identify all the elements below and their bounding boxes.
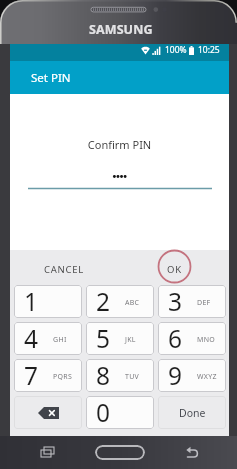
button[interactable]: 4: [14, 322, 82, 355]
button[interactable]: Set PIN: [10, 61, 229, 94]
button[interactable]: Done: [158, 396, 226, 429]
button[interactable]: OK: [158, 257, 191, 282]
staticText: 10:25: [198, 44, 220, 56]
staticText: JKL: [125, 335, 136, 345]
staticText: 3: [168, 285, 183, 318]
button[interactable]: Recent apps: [40, 445, 55, 460]
staticText: 100%: [165, 44, 187, 56]
button[interactable]: 7: [14, 359, 82, 392]
staticText: 7: [24, 359, 39, 392]
staticText: SAMSUNG: [89, 21, 153, 38]
staticText: DEF: [197, 298, 211, 308]
staticText: CANCEL: [44, 263, 85, 276]
staticText: OK: [167, 263, 182, 276]
staticText: 2: [96, 285, 111, 318]
staticText: GHI: [53, 335, 67, 345]
button[interactable]: Home: [95, 445, 145, 460]
staticText: 6: [168, 322, 183, 355]
button[interactable]: 6: [158, 322, 226, 355]
button[interactable]: 8: [86, 359, 154, 392]
staticText: 4: [24, 322, 39, 355]
button[interactable]: 2: [86, 285, 154, 318]
button[interactable]: 5: [86, 322, 154, 355]
staticText: 1: [24, 285, 39, 318]
staticText: 9: [168, 359, 183, 392]
staticText: Set PIN: [31, 70, 71, 86]
staticText: 0: [96, 396, 111, 429]
button[interactable]: CANCEL: [35, 257, 94, 282]
staticText: WXYZ: [197, 372, 217, 382]
button[interactable]: 3: [158, 285, 226, 318]
button[interactable]: Backspace: [14, 396, 82, 429]
button[interactable]: Back: [184, 445, 201, 462]
staticText: Done: [179, 406, 206, 420]
staticText: 5: [96, 322, 111, 355]
staticText: 8: [96, 359, 111, 392]
staticText: ABC: [125, 298, 140, 308]
staticText: PQRS: [53, 372, 73, 382]
staticText: MNO: [197, 335, 216, 345]
button[interactable]: 9: [158, 359, 226, 392]
staticText: TUV: [125, 372, 140, 382]
staticText: Confirm PIN: [10, 137, 229, 152]
button[interactable]: 1: [14, 285, 82, 318]
button[interactable]: 0: [86, 396, 154, 429]
